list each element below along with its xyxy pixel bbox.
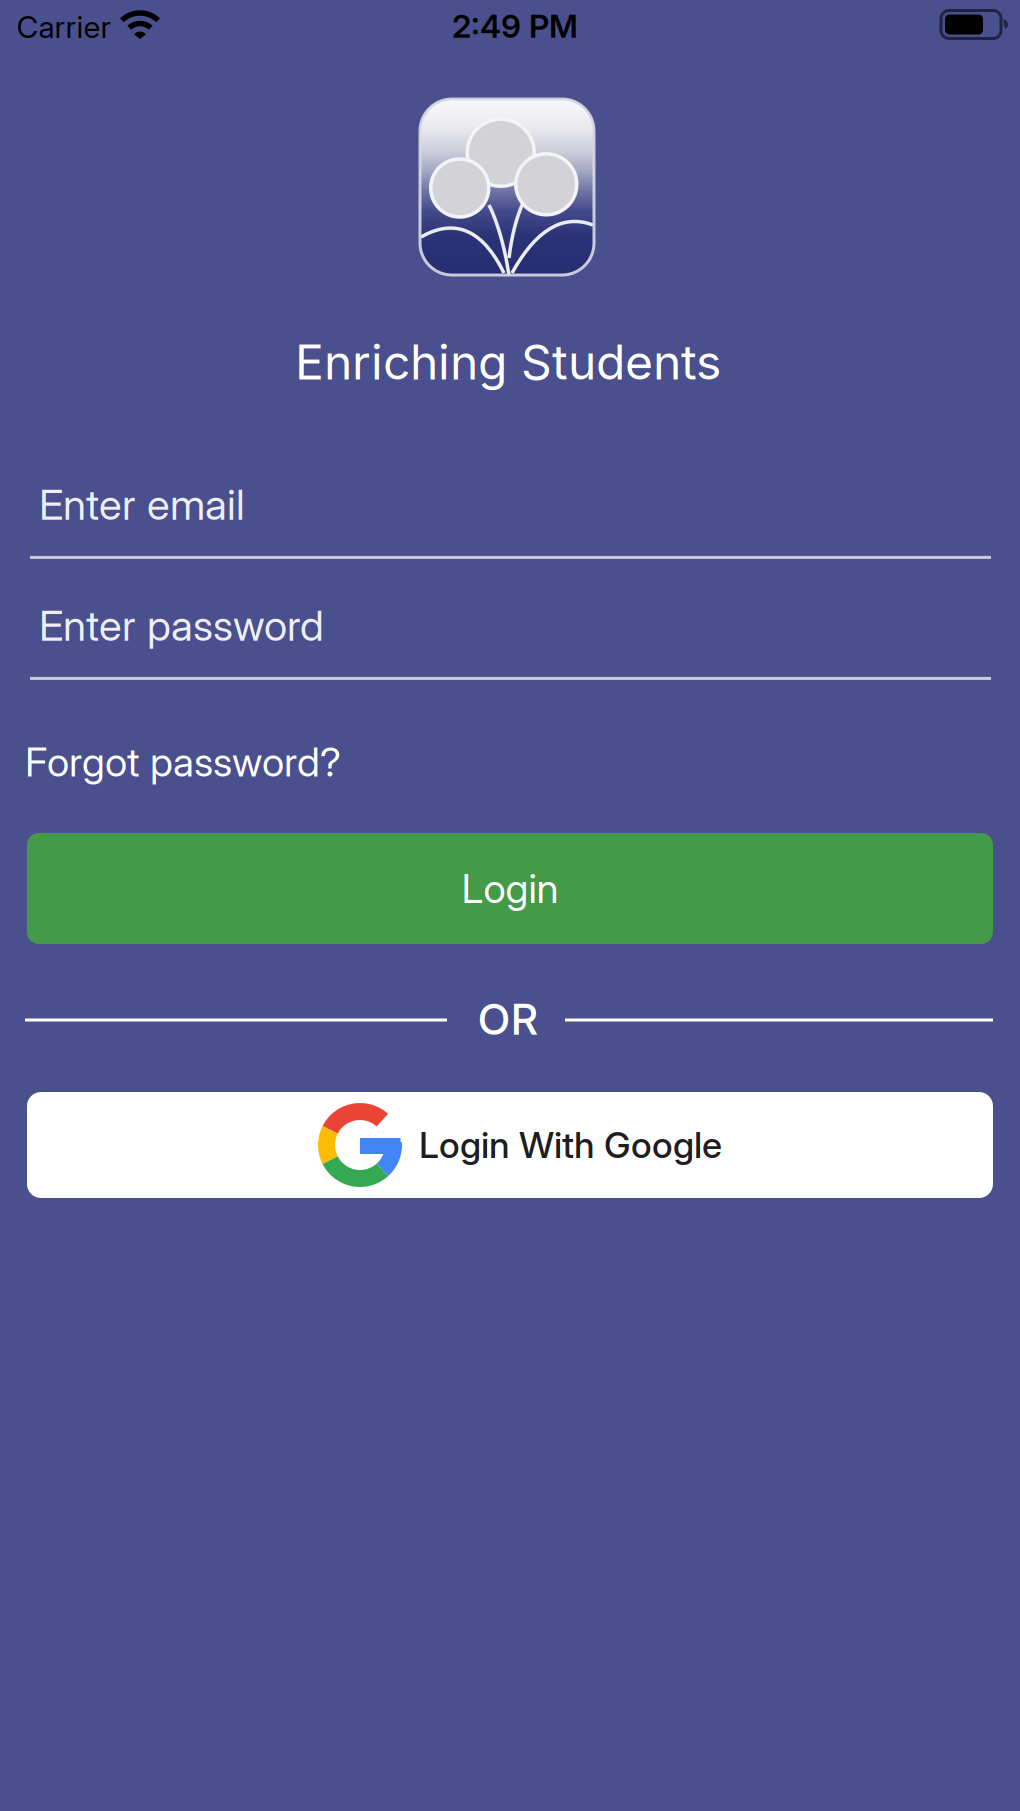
button[interactable]: Enter password bbox=[30, 600, 991, 680]
staticText: OR bbox=[477, 993, 538, 1045]
staticText: Forgot password? bbox=[25, 738, 341, 786]
staticText: Login With Google bbox=[419, 1123, 722, 1167]
staticText: Login bbox=[461, 864, 558, 913]
button[interactable]: Login bbox=[27, 833, 993, 944]
button[interactable]: Enter email bbox=[30, 479, 991, 559]
button[interactable]: Login With Google bbox=[27, 1092, 993, 1198]
staticText: Enter email bbox=[39, 479, 245, 530]
staticText: Enter password bbox=[39, 600, 324, 651]
staticText: 2:49 PM bbox=[452, 7, 578, 45]
staticText: Enriching Students bbox=[295, 333, 721, 391]
button[interactable]: Forgot password? bbox=[25, 738, 341, 786]
staticText: Carrier bbox=[16, 9, 111, 45]
